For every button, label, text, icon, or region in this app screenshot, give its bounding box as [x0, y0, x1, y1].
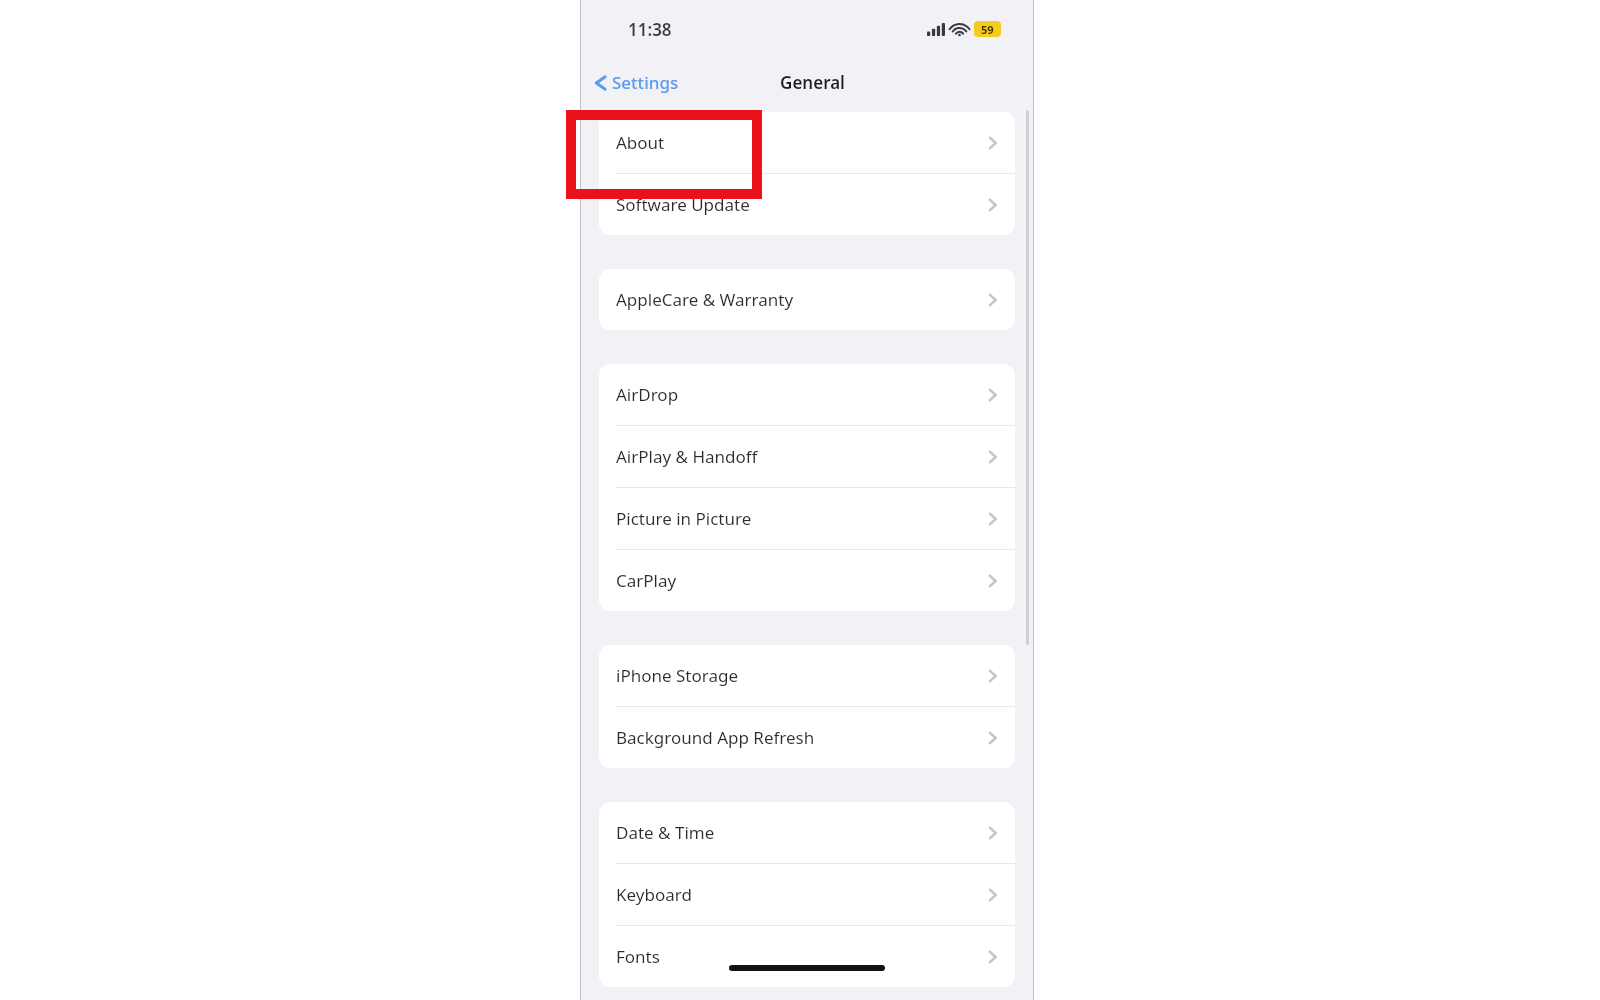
button[interactable]: Fonts: [599, 926, 1015, 987]
staticText: Keyboard: [616, 883, 692, 906]
staticText: 11:38: [628, 18, 672, 41]
button[interactable]: AirDrop: [599, 364, 1015, 425]
button[interactable]: AirPlay & Handoff: [599, 426, 1015, 487]
button[interactable]: iPhone Storage: [599, 645, 1015, 706]
button[interactable]: Date & Time: [599, 802, 1015, 863]
staticText: 59: [981, 22, 994, 37]
button[interactable]: Software Update: [599, 174, 1015, 235]
button[interactable]: Settings: [592, 67, 681, 98]
staticText: AirDrop: [616, 383, 679, 406]
button[interactable]: CarPlay: [599, 550, 1015, 611]
other: About highlight annotation: [566, 110, 762, 199]
staticText: Picture in Picture: [616, 507, 752, 530]
staticText: Background App Refresh: [616, 726, 815, 749]
button[interactable]: About: [599, 112, 1015, 173]
button[interactable]: Keyboard: [599, 864, 1015, 925]
staticText: Settings: [612, 71, 679, 94]
button[interactable]: Background App Refresh: [599, 707, 1015, 768]
staticText: AppleCare & Warranty: [616, 288, 794, 311]
button[interactable]: Picture in Picture: [599, 488, 1015, 549]
staticText: General: [780, 71, 845, 94]
button[interactable]: AppleCare & Warranty: [599, 269, 1015, 330]
staticText: iPhone Storage: [616, 664, 738, 687]
staticText: About: [616, 131, 665, 154]
staticText: CarPlay: [616, 569, 677, 592]
staticText: Fonts: [616, 945, 660, 968]
staticText: Software Update: [616, 193, 750, 216]
staticText: Date & Time: [616, 821, 715, 844]
staticText: AirPlay & Handoff: [616, 445, 758, 468]
